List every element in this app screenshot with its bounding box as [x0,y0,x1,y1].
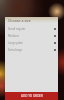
staticText: Extra large [8,48,23,52]
button[interactable]: Medium [5,32,58,39]
button[interactable]: Extra large [5,46,58,53]
staticText: ADD TO ORDER [21,94,43,98]
staticText: Medium [8,34,19,38]
staticText: Choose a size [8,18,31,23]
button[interactable]: Small regular [5,25,58,32]
button[interactable]: Large plate [5,39,58,46]
button[interactable]: ADD TO ORDER [5,92,58,100]
staticText: Small regular [8,27,26,31]
staticText: Large plate [8,41,23,45]
